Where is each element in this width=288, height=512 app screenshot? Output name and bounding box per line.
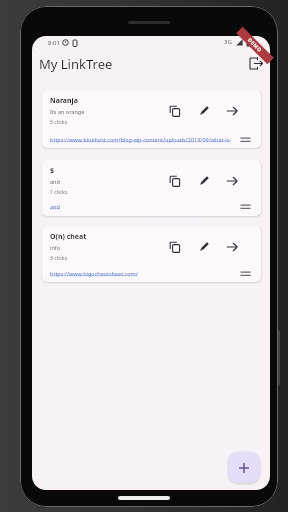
button[interactable] xyxy=(226,175,238,187)
button[interactable] xyxy=(169,241,181,253)
staticText: 5 clicks xyxy=(50,118,68,125)
staticText: My LinkTree xyxy=(39,55,113,73)
button[interactable] xyxy=(198,105,210,117)
button[interactable]: Naranja xyxy=(42,90,261,148)
staticText: 3 clicks xyxy=(50,254,68,261)
staticText: 1 clicks xyxy=(50,188,68,195)
button[interactable]: and xyxy=(50,203,250,210)
button[interactable]: $ xyxy=(42,160,261,216)
button[interactable] xyxy=(228,452,260,483)
button[interactable] xyxy=(226,105,238,117)
staticText: and xyxy=(50,178,60,185)
staticText: Naranja xyxy=(50,96,78,106)
button[interactable] xyxy=(226,241,238,253)
staticText: 8:01 xyxy=(48,39,60,47)
button[interactable] xyxy=(198,241,210,253)
staticText: O(n) cheat xyxy=(50,232,87,242)
button[interactable] xyxy=(169,105,181,117)
staticText: info xyxy=(50,244,61,251)
button[interactable] xyxy=(249,57,265,71)
staticText: 3G xyxy=(224,38,232,46)
button[interactable]: https://www.bigocheatsheet.com/ xyxy=(50,270,250,277)
staticText: $ xyxy=(50,166,55,176)
button[interactable] xyxy=(169,175,181,187)
staticText: DEMO xyxy=(246,37,264,54)
button[interactable] xyxy=(198,175,210,187)
staticText: Its an orange xyxy=(50,108,85,115)
button[interactable]: https://www.bluehost.com/blog-wp-content… xyxy=(50,136,250,143)
button[interactable]: O(n) cheat xyxy=(42,226,261,282)
